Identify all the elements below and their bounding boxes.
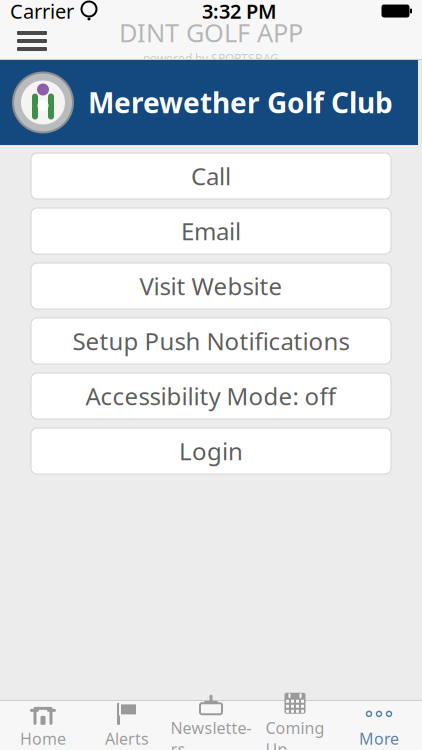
staticText: Visit Website [139, 270, 282, 302]
button[interactable]: Accessibility Mode: off [31, 373, 391, 419]
staticText: Login [179, 435, 243, 467]
button[interactable]: Coming Up [253, 701, 337, 750]
button[interactable]: Email [31, 208, 391, 254]
button[interactable]: Visit Website [31, 263, 391, 309]
button[interactable]: Login [31, 428, 391, 474]
staticText: Call [191, 160, 231, 192]
button[interactable]: Setup Push Notifications [31, 318, 391, 364]
staticText: Home [20, 728, 66, 749]
button[interactable]: Call [31, 153, 391, 199]
staticText: powered by SPORTSBAG [143, 50, 279, 66]
staticText: Setup Push Notifications [72, 325, 349, 357]
button[interactable]: More [337, 701, 421, 750]
button[interactable]: Newsletters [169, 701, 253, 750]
staticText: More [359, 728, 399, 749]
staticText: DINT GOLF APP [119, 16, 303, 49]
button[interactable]: Menu [6, 22, 58, 60]
button[interactable]: Alerts [85, 701, 169, 750]
staticText: Email [181, 215, 241, 247]
staticText: Carrier [10, 0, 74, 24]
button[interactable]: Home [1, 701, 85, 750]
staticText: Accessibility Mode: off [85, 380, 336, 412]
staticText: 3:32 PM [202, 0, 277, 24]
staticText: Coming Up [265, 717, 324, 750]
staticText: Merewether Golf Club [88, 84, 393, 121]
staticText: Newsletters [170, 717, 251, 750]
staticText: Alerts [105, 728, 149, 749]
